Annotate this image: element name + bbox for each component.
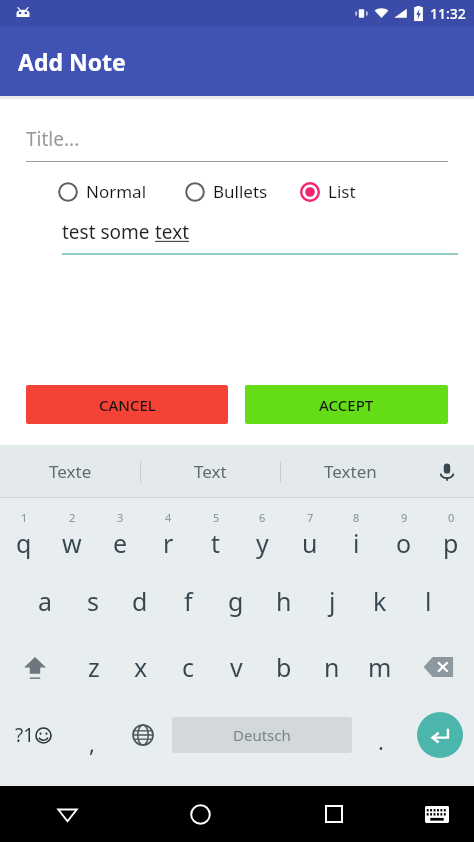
- button[interactable]: 3: [96, 502, 144, 568]
- button[interactable]: Switch keyboard: [400, 786, 474, 842]
- staticText: e: [113, 526, 128, 560]
- button[interactable]: 0: [427, 502, 474, 568]
- staticText: c: [182, 650, 195, 684]
- staticText: i: [353, 526, 360, 560]
- staticText: Deutsch: [233, 725, 291, 745]
- button[interactable]: f: [164, 568, 212, 634]
- staticText: Add Note: [18, 46, 126, 77]
- staticText: j: [329, 584, 336, 618]
- button[interactable]: 8: [333, 502, 380, 568]
- staticText: r: [163, 526, 174, 560]
- staticText: x: [134, 650, 148, 684]
- button[interactable]: Normal: [58, 176, 147, 207]
- staticText: t: [211, 526, 221, 560]
- staticText: 8: [353, 510, 360, 525]
- button[interactable]: j: [308, 568, 356, 634]
- staticText: f: [184, 584, 193, 618]
- button[interactable]: z: [70, 634, 117, 700]
- button[interactable]: k: [356, 568, 404, 634]
- button[interactable]: ?1: [0, 700, 66, 770]
- staticText: ,: [89, 728, 95, 758]
- button[interactable]: 4: [144, 502, 192, 568]
- button[interactable]: 6: [239, 502, 286, 568]
- button[interactable]: CANCEL: [26, 385, 228, 424]
- button[interactable]: Change language: [118, 700, 168, 770]
- button[interactable]: s: [69, 568, 116, 634]
- staticText: Text: [194, 460, 227, 483]
- staticText: l: [425, 584, 432, 618]
- button[interactable]: a: [22, 568, 69, 634]
- staticText: 11:32: [430, 4, 466, 23]
- staticText: 3: [117, 510, 124, 525]
- staticText: o: [396, 526, 412, 560]
- staticText: Bullets: [213, 180, 268, 203]
- button[interactable]: x: [117, 634, 164, 700]
- staticText: .: [378, 726, 384, 756]
- staticText: Texte: [49, 460, 92, 483]
- staticText: m: [368, 650, 392, 684]
- button[interactable]: Recents: [267, 786, 400, 842]
- staticText: a: [38, 584, 53, 618]
- button[interactable]: Home: [134, 786, 267, 842]
- button[interactable]: Text: [141, 445, 280, 498]
- staticText: 6: [259, 510, 266, 525]
- button[interactable]: g: [212, 568, 260, 634]
- button[interactable]: Texten: [281, 445, 420, 498]
- staticText: ?1: [15, 722, 35, 748]
- button[interactable]: v: [212, 634, 260, 700]
- button[interactable]: .: [356, 700, 406, 770]
- button[interactable]: Back: [0, 786, 134, 842]
- button[interactable]: d: [116, 568, 164, 634]
- staticText: 1: [21, 510, 28, 525]
- staticText: u: [302, 526, 318, 560]
- staticText: v: [230, 650, 243, 684]
- staticText: List: [328, 180, 356, 203]
- button[interactable]: h: [260, 568, 308, 634]
- staticText: Normal: [86, 180, 147, 203]
- button[interactable]: 5: [192, 502, 239, 568]
- staticText: CANCEL: [99, 395, 156, 415]
- staticText: h: [276, 584, 292, 618]
- button[interactable]: Voice input: [420, 445, 474, 498]
- staticText: k: [373, 584, 387, 618]
- button[interactable]: Bullets: [185, 176, 268, 207]
- button[interactable]: Texte: [0, 445, 140, 498]
- staticText: d: [132, 584, 148, 618]
- button[interactable]: 2: [48, 502, 96, 568]
- staticText: text: [155, 219, 190, 245]
- staticText: 5: [213, 510, 220, 525]
- button[interactable]: test some: [62, 219, 458, 255]
- staticText: n: [324, 650, 340, 684]
- staticText: 0: [448, 510, 455, 525]
- staticText: z: [88, 650, 100, 684]
- button[interactable]: 1: [0, 502, 48, 568]
- button[interactable]: c: [164, 634, 212, 700]
- button[interactable]: Deutsch: [172, 717, 352, 753]
- button[interactable]: n: [308, 634, 356, 700]
- staticText: y: [256, 526, 269, 560]
- staticText: 4: [165, 510, 172, 525]
- button[interactable]: ,: [66, 700, 118, 770]
- staticText: w: [62, 526, 82, 560]
- button[interactable]: Shift: [0, 634, 70, 700]
- button[interactable]: Backspace: [404, 634, 474, 700]
- button[interactable]: 7: [286, 502, 333, 568]
- staticText: 9: [401, 510, 408, 525]
- button[interactable]: Enter: [406, 700, 474, 770]
- button[interactable]: 9: [380, 502, 427, 568]
- staticText: Title...: [26, 126, 80, 152]
- button[interactable]: l: [404, 568, 452, 634]
- staticText: 7: [307, 510, 314, 525]
- staticText: p: [443, 526, 459, 560]
- staticText: 2: [69, 510, 76, 525]
- staticText: Texten: [324, 460, 377, 483]
- button[interactable]: m: [356, 634, 404, 700]
- staticText: g: [228, 584, 244, 618]
- button[interactable]: b: [260, 634, 308, 700]
- button[interactable]: Title...: [26, 126, 448, 162]
- staticText: q: [16, 526, 32, 560]
- button[interactable]: ACCEPT: [245, 385, 448, 424]
- button[interactable]: List: [300, 176, 356, 207]
- staticText: test some: [62, 219, 155, 245]
- staticText: s: [87, 584, 99, 618]
